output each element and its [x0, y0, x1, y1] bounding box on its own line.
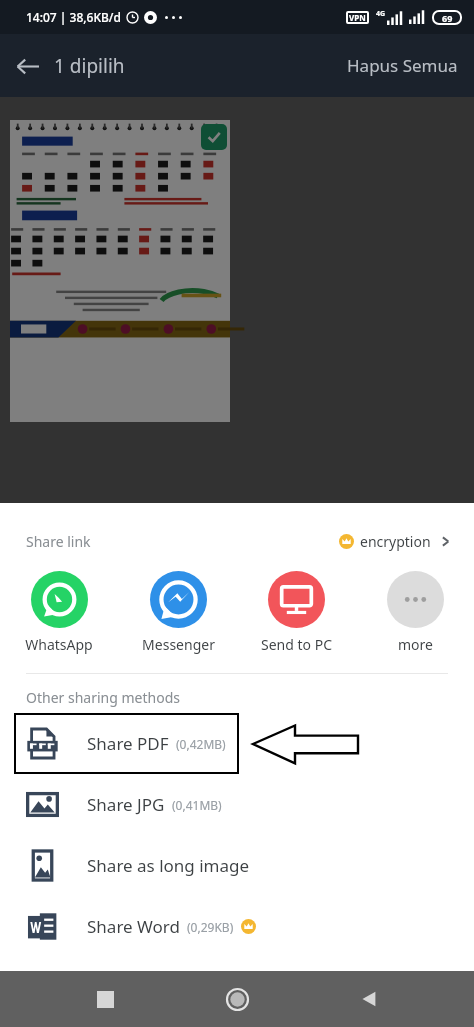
staticText: (0,41MB)	[172, 797, 222, 813]
staticText: Share JPG	[87, 793, 165, 816]
staticText: WhatsApp	[25, 635, 93, 654]
button[interactable]: Home	[209, 971, 265, 1027]
other: Selected	[201, 124, 227, 150]
button[interactable]: encryption	[335, 528, 456, 555]
staticText: (0,29KB)	[187, 919, 234, 935]
button[interactable]: Messenger	[123, 569, 233, 656]
button[interactable]: WhatsApp	[4, 569, 114, 656]
staticText: (0,42MB)	[176, 736, 226, 752]
staticText: VPN	[349, 12, 366, 23]
staticText: 4G	[376, 9, 386, 19]
staticText: 14:07 | 38,6KB/d	[26, 9, 121, 25]
button[interactable]: Share Word	[0, 896, 474, 957]
staticText: Hapus Semua	[347, 54, 458, 77]
staticText: Share PDF	[87, 732, 169, 755]
button[interactable]: Back	[0, 39, 54, 93]
staticText: Other sharing methods	[26, 688, 180, 707]
button[interactable]: more	[360, 569, 470, 656]
staticText: Share Word	[87, 915, 180, 938]
button[interactable]: Hapus Semua	[331, 42, 474, 89]
button[interactable]: Selected	[10, 120, 230, 422]
staticText: Send to PC	[261, 635, 332, 654]
staticText: 1 dipilih	[54, 53, 125, 79]
staticText: Share link	[26, 532, 91, 551]
button[interactable]: Share PDF	[0, 713, 474, 774]
staticText: more	[398, 635, 433, 654]
button[interactable]: Share JPG	[0, 774, 474, 835]
staticText: encryption	[360, 532, 431, 551]
button[interactable]: Back	[342, 971, 398, 1027]
button[interactable]: Send to PC	[241, 569, 351, 656]
button[interactable]: Recents	[77, 971, 133, 1027]
staticText: 69	[442, 12, 453, 24]
staticText: Share as long image	[87, 854, 250, 877]
staticText: Messenger	[142, 635, 215, 654]
button[interactable]: Share as long image	[0, 835, 474, 896]
